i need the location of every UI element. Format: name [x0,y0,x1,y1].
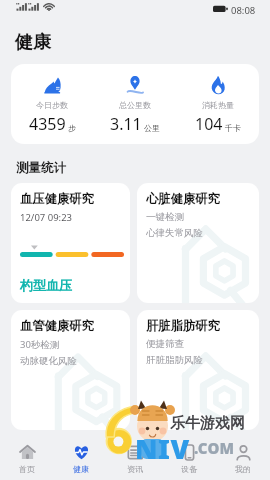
staticText: 30秒检测 [20,338,60,351]
staticText: 4359 [29,113,66,135]
staticText: 12/07 09:23 [20,211,73,224]
staticText: 08:08 [231,4,256,17]
staticText: 便捷筛查 [146,338,184,350]
button[interactable]: 首页 [0,436,54,480]
staticText: 血管健康研究 [20,318,94,333]
staticText: 设备 [181,464,197,474]
staticText: 血压健康研究 [20,191,94,206]
staticText: .COM [194,438,235,458]
staticText: NIV [135,430,190,467]
button[interactable]: 血管健康研究 [11,310,130,430]
staticText: 肝脏脂肪研究 [146,318,220,333]
staticText: 3.11 [110,113,142,135]
staticText: 首页 [19,464,35,474]
staticText: 消耗热量 [202,100,234,110]
staticText: 测量统计 [16,160,66,176]
staticText: 今日步数 [36,100,68,110]
button[interactable]: 我的 [216,436,270,480]
staticText: 心律失常风险 [146,227,203,239]
staticText: 千卡 [225,123,241,133]
staticText: 肝脏脂肪风险 [146,354,203,366]
staticText: 总公里数 [119,100,151,110]
staticText: 步 [68,123,76,133]
staticText: 104 [195,113,223,135]
staticText: 动脉硬化风险 [20,355,77,367]
staticText: 心脏健康研究 [146,191,220,206]
button[interactable]: 资讯 [108,436,162,480]
staticText: 公里 [144,123,160,133]
staticText: 健康 [15,31,51,54]
staticText: 健康 [73,464,89,474]
staticText: 资讯 [127,464,143,474]
staticText: 杓型血压 [20,277,72,293]
button[interactable]: 心脏健康研究 [137,183,259,303]
button[interactable]: 今日步数 [11,64,259,144]
staticText: 乐牛游戏网 [170,414,245,433]
button[interactable]: 肝脏脂肪研究 [137,310,259,430]
staticText: 一键检测 [146,211,184,223]
staticText: 我的 [235,464,251,474]
button[interactable]: 设备 [162,436,216,480]
button[interactable]: 血压健康研究 [11,183,130,303]
button[interactable]: 健康 [54,436,108,480]
